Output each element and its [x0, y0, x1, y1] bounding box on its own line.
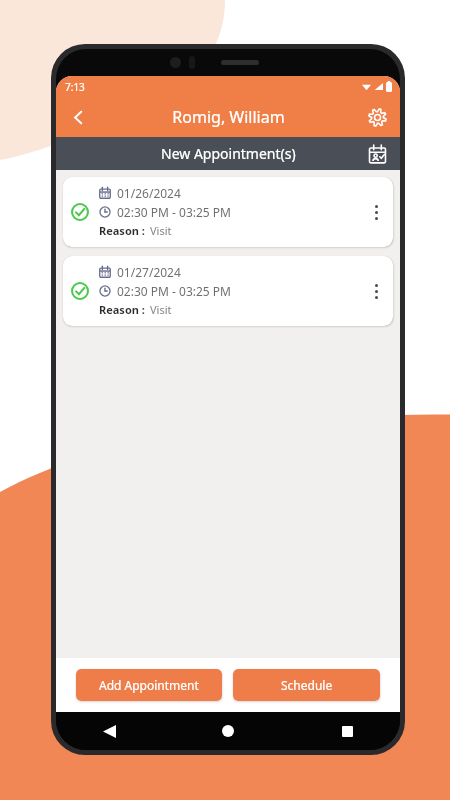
button[interactable]: Add Appointment — [76, 669, 222, 701]
button[interactable]: Back — [94, 716, 124, 746]
staticText: 01/26/2024 — [117, 185, 181, 201]
button[interactable]: Recents — [332, 716, 362, 746]
staticText: Reason : — [99, 302, 145, 317]
staticText: Romig, William — [172, 106, 285, 128]
button[interactable]: Appointment calendar — [362, 139, 392, 169]
staticText: 01/27/2024 — [117, 264, 181, 280]
button[interactable]: Schedule — [233, 669, 380, 701]
button[interactable]: 01/27/2024 — [63, 256, 393, 326]
button[interactable]: More options — [363, 199, 389, 225]
staticText: Visit — [150, 302, 172, 317]
staticText: New Appointment(s) — [161, 144, 296, 163]
button[interactable]: Settings — [359, 99, 395, 135]
button[interactable]: Home — [213, 716, 243, 746]
staticText: 7:13 — [65, 80, 85, 94]
staticText: Reason : — [99, 223, 145, 238]
button[interactable]: 01/26/2024 — [63, 177, 393, 247]
staticText: Add Appointment — [99, 677, 199, 693]
button[interactable]: More options — [363, 278, 389, 304]
staticText: 02:30 PM - 03:25 PM — [117, 204, 231, 220]
button[interactable]: Back — [59, 98, 97, 136]
staticText: Schedule — [281, 677, 333, 693]
staticText: 02:30 PM - 03:25 PM — [117, 283, 231, 299]
staticText: Visit — [150, 223, 172, 238]
